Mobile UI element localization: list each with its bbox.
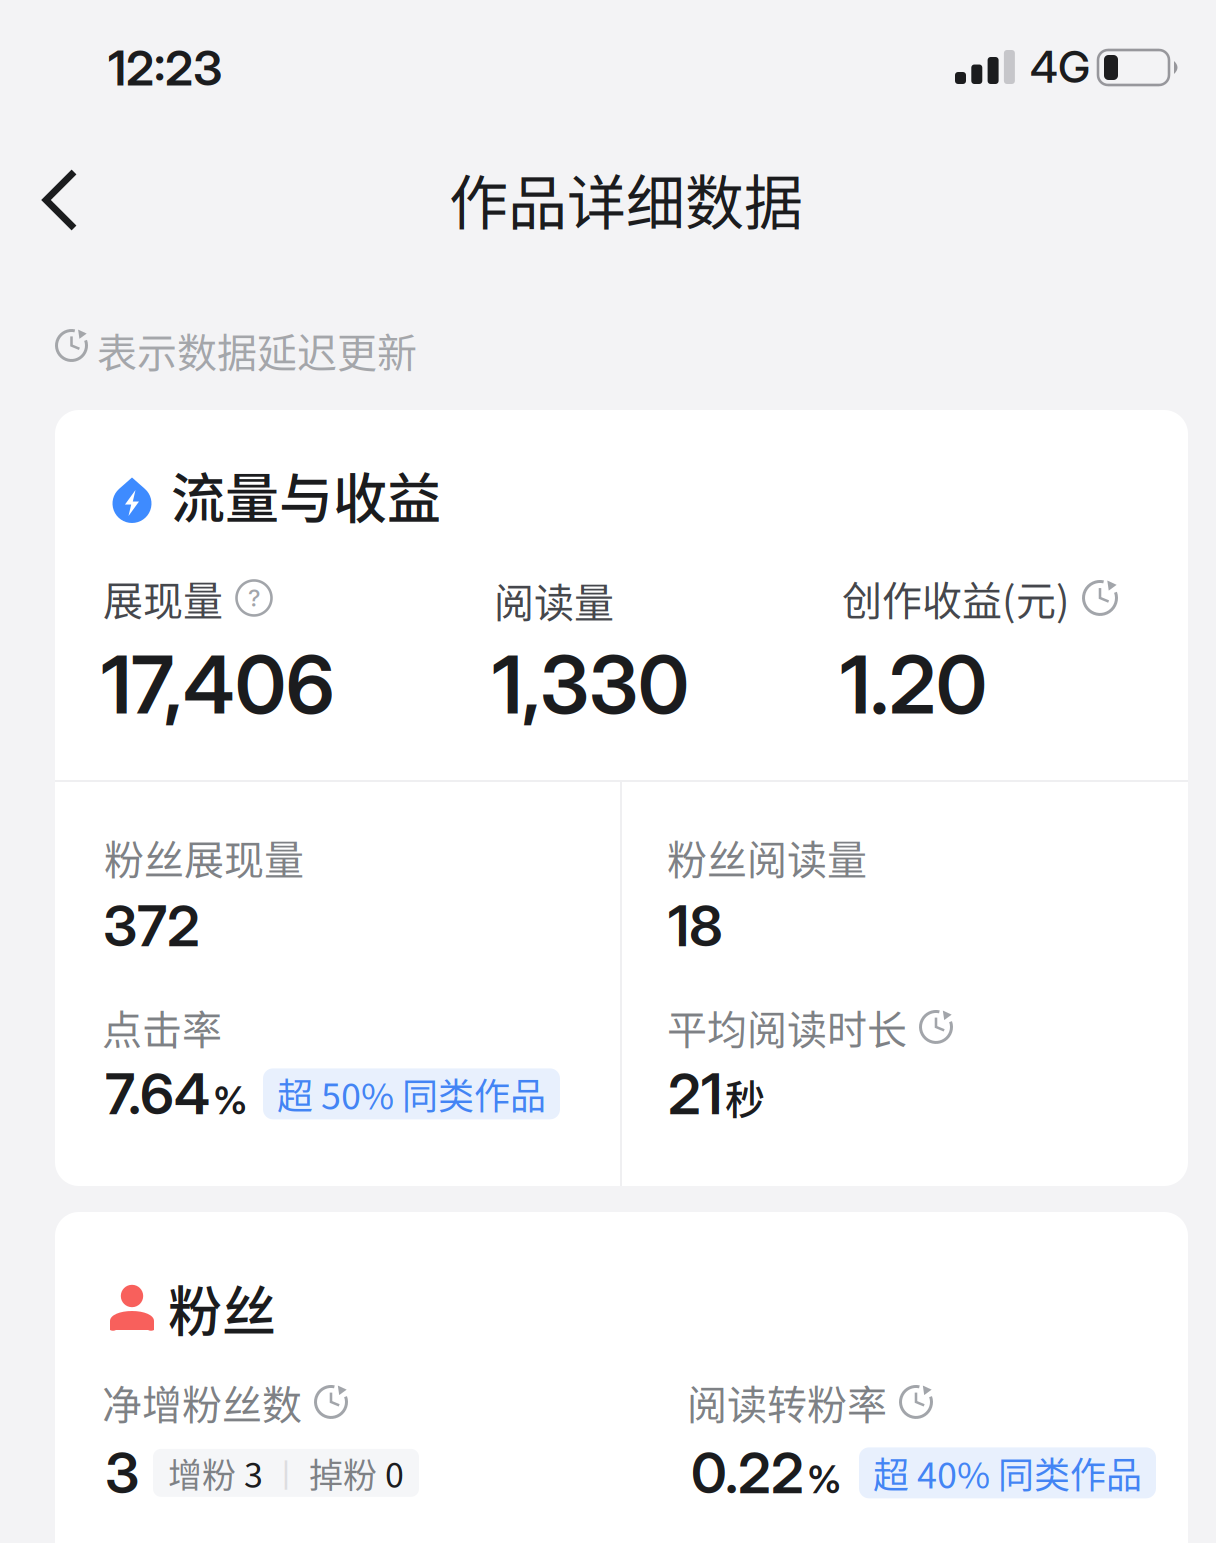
- staticText: 丨: [263, 1450, 309, 1496]
- staticText: 1,330: [492, 636, 689, 733]
- button[interactable]: Back: [42, 171, 80, 231]
- staticText: 表示数据延迟更新: [97, 321, 417, 379]
- staticText: 净增粉丝数: [102, 1373, 302, 1431]
- staticText: 粉丝展现量: [104, 828, 304, 886]
- staticText: 4G: [1030, 40, 1090, 93]
- staticText: 阅读量: [494, 571, 614, 629]
- staticText: 1.20: [840, 636, 987, 733]
- staticText: 超 50% 同类作品: [277, 1068, 546, 1120]
- staticText: 流量与收益: [171, 456, 441, 534]
- staticText: 超 40% 同类作品: [873, 1447, 1142, 1499]
- staticText: 21: [668, 1060, 722, 1128]
- staticText: 0: [385, 1448, 404, 1497]
- staticText: 7.64: [105, 1060, 210, 1128]
- staticText: 18: [668, 892, 723, 960]
- staticText: 粉丝: [168, 1269, 276, 1347]
- staticText: 掉粉: [309, 1448, 385, 1497]
- staticText: 372: [103, 892, 200, 960]
- staticText: 创作收益(元): [842, 569, 1070, 627]
- staticText: 3: [244, 1448, 263, 1497]
- button[interactable]: 展现量说明: [235, 579, 273, 617]
- staticText: 17,406: [101, 636, 334, 733]
- staticText: %: [213, 1077, 247, 1123]
- staticText: 0.22: [691, 1439, 804, 1507]
- staticText: %: [807, 1456, 841, 1502]
- staticText: 粉丝阅读量: [667, 828, 867, 886]
- staticText: 阅读转粉率: [687, 1373, 887, 1431]
- staticText: 秒: [725, 1068, 765, 1126]
- staticText: 点击率: [102, 998, 222, 1056]
- staticText: 12:23: [108, 39, 222, 97]
- staticText: 3: [105, 1439, 139, 1507]
- staticText: 展现量: [103, 569, 223, 627]
- staticText: 作品详细数据: [449, 156, 803, 241]
- staticText: 平均阅读时长: [667, 998, 907, 1056]
- staticText: 增粉: [168, 1448, 244, 1497]
- staticText: ?: [248, 584, 260, 612]
